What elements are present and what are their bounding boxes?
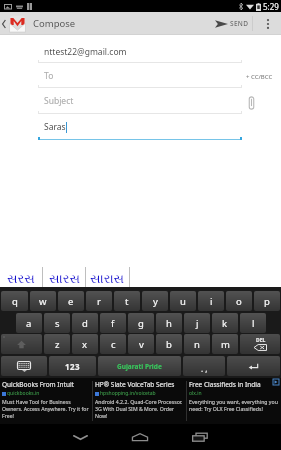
staticText: Saras	[44, 121, 66, 133]
staticText: x	[82, 338, 88, 351]
button[interactable]: Delete	[240, 334, 280, 354]
button[interactable]: c	[100, 334, 126, 354]
staticText: 5:29	[263, 1, 279, 12]
button[interactable]: v	[128, 334, 154, 354]
staticText: j	[196, 317, 199, 330]
staticText: Compose	[33, 17, 76, 30]
staticText: y	[153, 295, 158, 308]
button[interactable]: g	[128, 313, 154, 333]
button[interactable]: m	[212, 334, 238, 354]
staticText: m	[221, 338, 230, 351]
button[interactable]: j	[184, 313, 210, 333]
button[interactable]: w	[30, 291, 56, 311]
button[interactable]: HP® Slate VoiceTab Series	[93, 378, 187, 424]
staticText: To	[44, 70, 54, 82]
staticText: b	[166, 338, 172, 351]
button[interactable]: SEND	[212, 12, 252, 35]
button[interactable]: Home	[121, 424, 159, 450]
button[interactable]: Enter	[227, 356, 280, 376]
staticText: hpshopping.in/voicetab	[100, 390, 156, 397]
staticText: HP® Slate VoiceTab Series	[95, 380, 175, 389]
button[interactable]: d	[72, 313, 98, 333]
staticText: p	[264, 295, 270, 308]
staticText: u	[180, 295, 186, 308]
staticText: SEND	[230, 19, 249, 28]
staticText: સારસ	[49, 273, 80, 286]
staticText: l	[252, 317, 255, 330]
button[interactable]: z	[44, 334, 70, 354]
button[interactable]: l	[240, 313, 266, 333]
staticText: d	[82, 317, 88, 330]
button[interactable]: y	[142, 291, 168, 311]
staticText: Free Classifieds in India	[189, 380, 261, 389]
staticText: સરસ	[7, 273, 35, 286]
staticText: + CC/BCC	[246, 73, 273, 81]
staticText: QuickBooks From Intuit	[2, 380, 74, 389]
button[interactable]: n	[184, 334, 210, 354]
staticText: r	[97, 295, 101, 308]
button[interactable]: સારસ	[43, 266, 85, 287]
button[interactable]: Numbers	[49, 356, 96, 376]
button[interactable]: f	[100, 313, 126, 333]
button[interactable]: x	[72, 334, 98, 354]
button[interactable]: u	[170, 291, 196, 311]
staticText: a	[26, 317, 32, 330]
staticText: k	[222, 317, 228, 330]
button[interactable]: Switch keyboard	[1, 356, 47, 376]
staticText: Gujarati Pride	[117, 362, 162, 371]
button[interactable]: Space	[98, 356, 181, 376]
button[interactable]: સરસ	[0, 266, 42, 287]
staticText: Must Have Tool for Business Owners. Acce…	[2, 398, 92, 419]
staticText: quickbooks.in	[7, 390, 40, 397]
staticText: z	[55, 338, 60, 351]
staticText: Android 4.2.2. Quad-Core Processor. 3G W…	[95, 398, 186, 419]
staticText: e	[68, 295, 74, 308]
staticText: f	[111, 317, 115, 330]
staticText: olx.in	[189, 390, 202, 397]
staticText: n	[194, 338, 200, 351]
staticText: q	[12, 295, 18, 308]
button[interactable]: k	[212, 313, 238, 333]
button[interactable]: t	[114, 291, 140, 311]
staticText: DEL	[256, 337, 266, 344]
staticText: o	[236, 295, 242, 308]
staticText: Everything you want, everything you need…	[189, 398, 280, 412]
staticText: nttest22@gmail.com	[44, 46, 127, 58]
staticText: . ,	[201, 363, 208, 374]
staticText: w	[39, 295, 47, 308]
button[interactable]: Recent apps	[181, 424, 219, 450]
staticText: i	[210, 295, 213, 308]
button[interactable]: Free Classifieds in India	[187, 378, 281, 424]
staticText: s	[55, 317, 60, 330]
button[interactable]: a	[16, 313, 42, 333]
button[interactable]: q	[1, 291, 28, 311]
button[interactable]: Back	[61, 424, 99, 450]
button[interactable]: Navigate up	[0, 12, 28, 35]
staticText: g	[138, 317, 144, 330]
button[interactable]: Comma and period	[183, 356, 225, 376]
button[interactable]: More options	[254, 12, 281, 35]
button[interactable]: h	[156, 313, 182, 333]
button[interactable]: Attach file	[248, 96, 255, 110]
button[interactable]: Shift	[1, 334, 42, 354]
staticText: સારાસ	[90, 273, 125, 286]
button[interactable]: p	[254, 291, 280, 311]
button[interactable]: QuickBooks From Intuit	[0, 378, 93, 424]
staticText: t	[125, 295, 129, 308]
button[interactable]: o	[226, 291, 252, 311]
button[interactable]: સારાસ	[86, 266, 129, 287]
staticText: 123	[65, 361, 80, 372]
button[interactable]: e	[58, 291, 84, 311]
staticText: c	[111, 338, 116, 351]
staticText: v	[139, 338, 144, 351]
button[interactable]: r	[86, 291, 112, 311]
button[interactable]: s	[44, 313, 70, 333]
staticText: Subject	[44, 95, 74, 107]
staticText: h	[166, 317, 172, 330]
button[interactable]: i	[198, 291, 224, 311]
button[interactable]: b	[156, 334, 182, 354]
